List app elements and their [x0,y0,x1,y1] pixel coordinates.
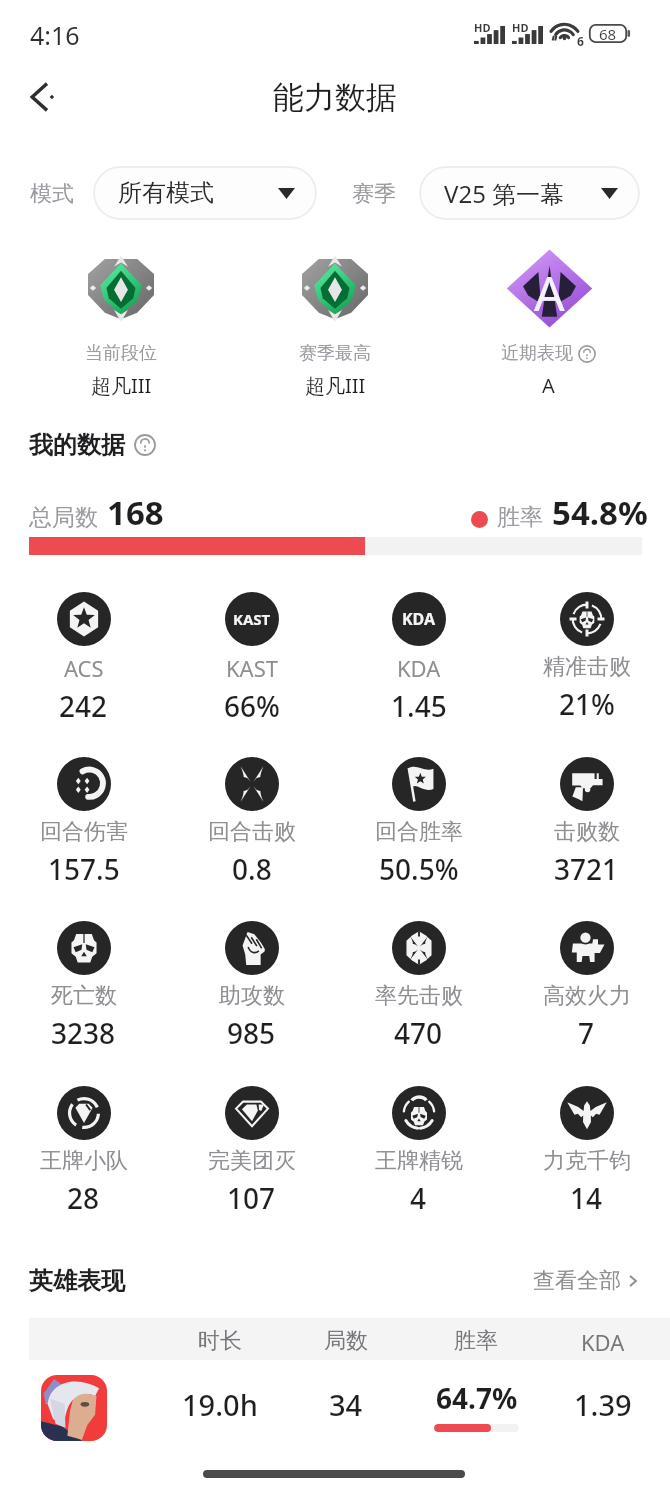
staticText: KDA [402,608,436,630]
staticText: 胜率 [497,503,543,532]
staticText: 胜率 [454,1327,498,1355]
button[interactable]: ACS [0,592,167,725]
staticText: 50.5% [379,850,459,888]
button[interactable]: 回合伤害 [0,757,167,888]
staticText: 14 [570,1179,603,1217]
staticText: 3721 [554,850,619,888]
staticText: 我的数据 [29,430,125,460]
button[interactable]: KDA [335,592,502,725]
button[interactable]: 完美团灭 [168,1086,335,1217]
staticText: 68 [599,24,617,43]
staticText: 查看全部 [533,1267,621,1295]
staticText: 击败数 [554,818,620,846]
staticText: 19.0h [182,1385,258,1424]
staticText: 985 [227,1014,276,1052]
button[interactable]: 赛季最高 [251,248,419,399]
staticText: 死亡数 [51,982,117,1010]
button[interactable]: KAST [168,592,335,725]
staticText: 王牌小队 [40,1147,128,1175]
button[interactable]: 率先击败 [335,921,502,1052]
staticText: 回合胜率 [375,818,463,846]
staticText: 回合击败 [208,818,296,846]
staticText: KDA [581,1327,625,1357]
button[interactable]: 死亡数 [0,921,167,1052]
staticText: 34 [329,1385,363,1424]
staticText: 28 [67,1179,100,1217]
staticText: KAST [226,653,278,683]
staticText: 242 [59,687,108,725]
staticText: 64.7% [436,1379,518,1417]
button[interactable]: 王牌小队 [0,1086,167,1217]
staticText: 回合伤害 [40,818,128,846]
staticText: 4 [410,1179,427,1217]
button[interactable]: 当前段位 [37,248,205,399]
staticText: 3238 [51,1014,116,1052]
staticText: 王牌精锐 [375,1147,463,1175]
staticText: 模式 [30,180,74,208]
staticText: 超凡III [91,372,152,399]
staticText: 54.8% [552,490,648,535]
staticText: 7 [578,1014,595,1052]
staticText: A [542,372,555,399]
button[interactable]: 回合胜率 [335,757,502,888]
staticText: 107 [227,1179,276,1217]
staticText: 赛季最高 [299,342,371,365]
button[interactable]: Back [12,68,70,126]
staticText: 超凡III [305,372,366,399]
staticText: 当前段位 [85,342,157,365]
staticText: 157.5 [48,850,120,888]
staticText: 近期表现 [501,342,573,365]
staticText: 66% [224,687,280,725]
button[interactable]: 击败数 [503,757,670,888]
button[interactable]: 回合击败 [168,757,335,888]
staticText: 高效火力 [543,982,631,1010]
button[interactable]: 王牌精锐 [335,1086,502,1217]
button[interactable]: A [464,248,632,399]
staticText: 精准击败 [543,653,631,681]
staticText: 168 [107,490,164,535]
button[interactable]: 力克千钧 [503,1086,670,1217]
staticText: KAST [233,609,271,629]
staticText: 4:16 [30,18,80,52]
staticText: 1.39 [574,1385,632,1424]
button[interactable]: Help [133,433,157,457]
staticText: 总局数 [29,503,98,532]
button[interactable]: V25 第一幕 [419,166,640,220]
staticText: 赛季 [352,180,396,208]
staticText: 1.45 [391,687,447,725]
staticText: ACS [64,653,104,683]
staticText: 时长 [198,1327,242,1355]
button[interactable]: 查看全部 [533,1267,642,1295]
button[interactable]: 精准击败 [503,592,670,723]
staticText: V25 第一幕 [444,177,565,210]
staticText: 6 [577,33,584,49]
button[interactable]: Agent Jett [41,1375,107,1441]
button[interactable]: 高效火力 [503,921,670,1052]
staticText: 英雄表现 [29,1266,125,1296]
staticText: 局数 [324,1327,368,1355]
button[interactable]: 所有模式 [93,166,317,220]
staticText: 能力数据 [273,78,397,117]
staticText: A [534,260,565,325]
staticText: HD [474,20,491,35]
staticText: 0.8 [232,850,272,888]
staticText: KDA [397,653,441,683]
staticText: HD [512,20,529,35]
staticText: 完美团灭 [208,1147,296,1175]
staticText: 助攻数 [219,982,285,1010]
staticText: 率先击败 [375,982,463,1010]
staticText: 470 [394,1014,443,1052]
staticText: 21% [559,685,615,723]
staticText: 力克千钧 [543,1147,631,1175]
button[interactable]: 助攻数 [168,921,335,1052]
staticText: 所有模式 [118,178,214,208]
